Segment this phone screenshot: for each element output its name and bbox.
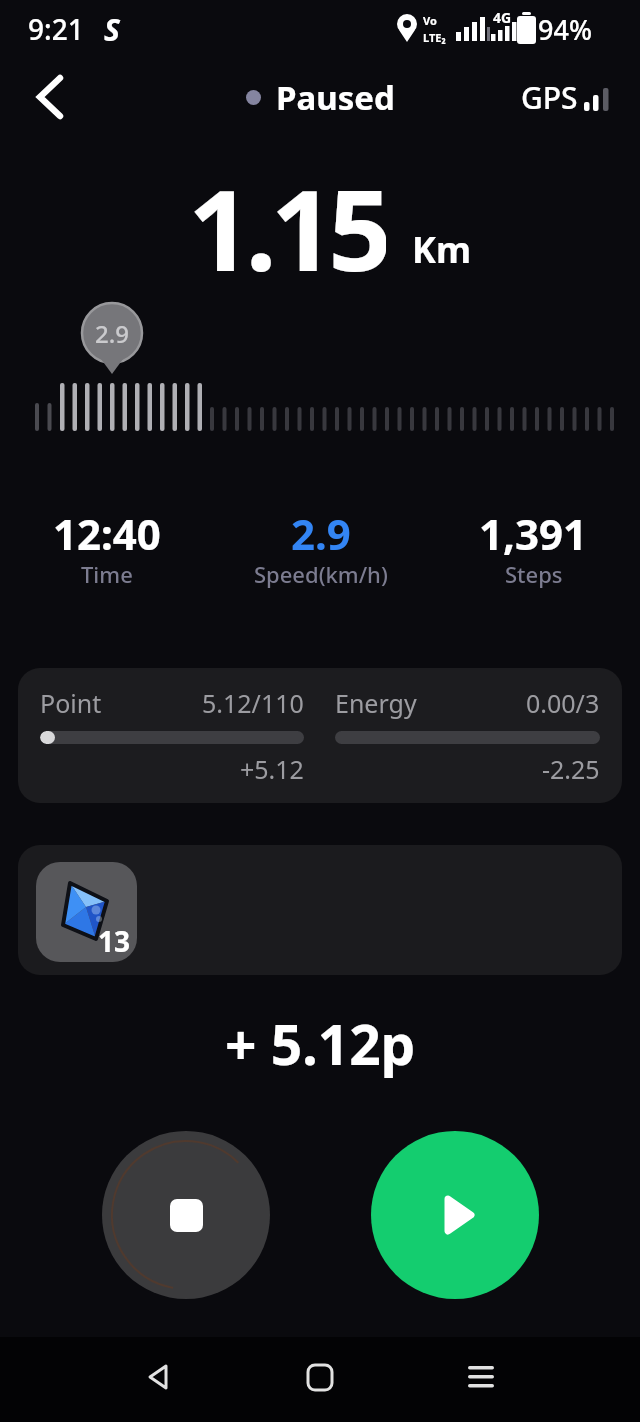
staticText: Point <box>40 686 102 720</box>
staticText: Vo <box>423 13 437 28</box>
staticText: GPS <box>521 77 578 118</box>
staticText: 1.15 <box>188 152 386 276</box>
staticText: +5.12 <box>240 752 304 786</box>
staticText: 94% <box>538 11 592 48</box>
staticText: 2.9 <box>95 317 129 350</box>
staticText: 9:21 <box>28 10 84 48</box>
staticText: 12:40 <box>53 505 161 562</box>
staticText: 0.00/3 <box>526 686 600 720</box>
staticText: Time <box>81 559 133 589</box>
staticText: Paused <box>276 75 395 120</box>
staticText: Km <box>412 225 472 274</box>
staticText: 1,391 <box>479 505 588 562</box>
staticText: Speed(km/h) <box>254 559 388 589</box>
staticText: 2.9 <box>291 505 351 562</box>
staticText: 5.12/110 <box>202 686 304 720</box>
staticText: S <box>104 9 120 50</box>
staticText: Energy <box>335 686 417 720</box>
staticText: Steps <box>505 559 563 589</box>
staticText: + 5.12p <box>225 1006 416 1078</box>
staticText: -2.25 <box>542 752 600 786</box>
staticText: 13 <box>98 922 131 960</box>
staticText: 4G <box>493 8 512 27</box>
staticText: LTE₂ <box>423 30 446 45</box>
